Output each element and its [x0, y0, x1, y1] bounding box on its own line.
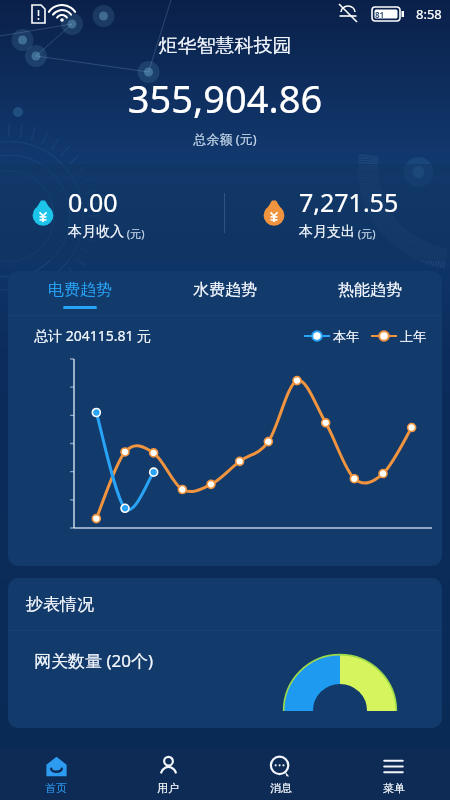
- staticText: (元): [355, 226, 376, 241]
- staticText: 总计 204115.81 元: [34, 326, 152, 345]
- staticText: 首页: [45, 781, 67, 795]
- staticText: 本年: [333, 328, 359, 344]
- button[interactable]: 抄表情况: [8, 578, 442, 728]
- staticText: 总余额 (元): [0, 130, 450, 148]
- staticText: 7,271.55: [299, 185, 399, 219]
- button[interactable]: 用户: [112, 748, 224, 800]
- staticText: 355,904.86: [0, 72, 450, 124]
- staticText: 热能趋势: [338, 280, 402, 300]
- button[interactable]: 7,271.55: [225, 164, 450, 261]
- button[interactable]: 0.00: [0, 164, 224, 261]
- button[interactable]: 消息: [224, 748, 337, 800]
- staticText: 网关数量 (20个): [34, 649, 154, 672]
- staticText: 8:58: [416, 5, 442, 23]
- staticText: 消息: [270, 781, 292, 795]
- button[interactable]: 首页: [0, 748, 112, 800]
- staticText: (元): [124, 226, 145, 241]
- staticText: 上年: [400, 328, 426, 344]
- button[interactable]: 热能趋势: [297, 271, 442, 315]
- staticText: 水费趋势: [193, 280, 257, 300]
- staticText: 电费趋势: [48, 280, 112, 300]
- staticText: 菜单: [383, 781, 405, 795]
- staticText: 本月收入: [68, 223, 124, 241]
- staticText: 抄表情况: [26, 594, 94, 615]
- button[interactable]: 水费趋势: [152, 271, 297, 315]
- staticText: 炬华智慧科技园: [0, 34, 450, 58]
- button[interactable]: 菜单: [337, 748, 450, 800]
- staticText: 本月支出: [299, 223, 355, 241]
- staticText: 用户: [157, 781, 179, 795]
- staticText: 0.00: [68, 185, 118, 219]
- button[interactable]: 电费趋势: [8, 271, 152, 315]
- staticText: 81: [375, 9, 385, 20]
